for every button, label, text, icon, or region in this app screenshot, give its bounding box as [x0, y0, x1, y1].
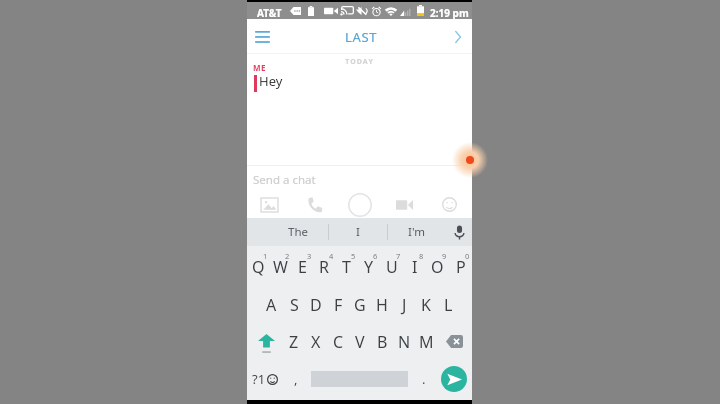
- staticText: E: [298, 256, 307, 278]
- button[interactable]: N: [393, 323, 415, 360]
- staticText: ?1: [252, 370, 266, 388]
- button[interactable]: S: [283, 286, 305, 323]
- button[interactable]: Backspace: [437, 323, 472, 360]
- staticText: 4: [329, 251, 334, 261]
- staticText: J: [402, 294, 407, 316]
- staticText: H: [376, 294, 388, 316]
- button[interactable]: B: [371, 323, 393, 360]
- staticText: 1: [263, 251, 268, 261]
- staticText: 7: [396, 251, 401, 261]
- button[interactable]: M: [415, 323, 437, 360]
- button[interactable]: 3: [291, 250, 313, 286]
- staticText: C: [333, 331, 344, 353]
- staticText: L: [444, 294, 453, 316]
- staticText: I: [356, 224, 360, 240]
- button[interactable]: I'm: [387, 218, 446, 246]
- staticText: 2: [285, 251, 290, 261]
- button[interactable]: 0: [449, 250, 472, 286]
- button[interactable]: A: [260, 286, 283, 323]
- button[interactable]: 6: [357, 250, 380, 286]
- button[interactable]: Next: [443, 19, 472, 54]
- button[interactable]: 4: [313, 250, 335, 286]
- button[interactable]: Z: [282, 323, 305, 360]
- staticText: ME: [253, 62, 267, 73]
- staticText: TODAY: [247, 57, 472, 67]
- staticText: U: [386, 256, 398, 278]
- button[interactable]: F: [327, 286, 349, 323]
- staticText: ,: [294, 370, 298, 388]
- staticText: M: [419, 331, 434, 353]
- staticText: X: [311, 331, 321, 353]
- button[interactable]: L: [437, 286, 459, 323]
- staticText: O: [431, 256, 444, 278]
- button[interactable]: Send: [436, 360, 472, 397]
- staticText: Hey: [259, 72, 283, 90]
- button[interactable]: Voice input: [446, 218, 472, 246]
- staticText: V: [355, 331, 365, 353]
- button[interactable]: ,: [283, 360, 308, 397]
- staticText: R: [319, 256, 329, 278]
- button[interactable]: X: [305, 323, 327, 360]
- staticText: S: [290, 294, 299, 316]
- staticText: Y: [364, 256, 374, 278]
- button[interactable]: Video call: [382, 191, 427, 218]
- staticText: The: [288, 224, 308, 240]
- button[interactable]: 7: [380, 250, 403, 286]
- staticText: 6: [373, 251, 378, 261]
- button[interactable]: Camera: [337, 191, 382, 218]
- button[interactable]: C: [327, 323, 349, 360]
- button[interactable]: Gallery: [247, 191, 292, 218]
- staticText: T: [342, 256, 351, 278]
- staticText: .: [422, 370, 426, 388]
- staticText: N: [398, 331, 411, 353]
- button[interactable]: Space: [308, 360, 411, 397]
- button[interactable]: K: [415, 286, 437, 323]
- staticText: 5: [351, 251, 356, 261]
- button[interactable]: 5: [335, 250, 357, 286]
- staticText: 3: [307, 251, 312, 261]
- staticText: Z: [289, 331, 299, 353]
- button[interactable]: Call: [292, 191, 337, 218]
- staticText: LAST: [345, 28, 378, 46]
- staticText: F: [334, 294, 343, 316]
- staticText: P: [456, 256, 466, 278]
- button[interactable]: 2: [269, 250, 291, 286]
- staticText: B: [377, 331, 388, 353]
- staticText: G: [354, 294, 366, 316]
- staticText: D: [310, 294, 322, 316]
- button[interactable]: Shift: [247, 323, 282, 360]
- button[interactable]: .: [411, 360, 436, 397]
- button[interactable]: The: [268, 218, 328, 246]
- button[interactable]: V: [349, 323, 371, 360]
- staticText: K: [421, 294, 431, 316]
- button[interactable]: D: [305, 286, 327, 323]
- staticText: I'm: [408, 224, 425, 240]
- button[interactable]: I: [328, 218, 387, 246]
- button[interactable]: Stickers: [427, 191, 472, 218]
- button[interactable]: H: [371, 286, 393, 323]
- button[interactable]: 1: [247, 250, 269, 286]
- staticText: 0: [465, 251, 470, 261]
- button[interactable]: G: [349, 286, 371, 323]
- staticText: Send a chat: [253, 172, 316, 188]
- staticText: AT&T: [257, 6, 282, 20]
- button[interactable]: Menu: [247, 19, 281, 54]
- staticText: 8: [419, 251, 424, 261]
- staticText: I: [412, 256, 418, 278]
- button[interactable]: J: [393, 286, 415, 323]
- button[interactable]: 8: [403, 250, 426, 286]
- button[interactable]: 9: [426, 250, 449, 286]
- staticText: 2:19 pm: [430, 6, 469, 20]
- staticText: W: [273, 256, 288, 278]
- staticText: A: [266, 294, 277, 316]
- staticText: Q: [252, 256, 265, 278]
- staticText: 9: [442, 251, 447, 261]
- button[interactable]: Symbols: [247, 360, 283, 397]
